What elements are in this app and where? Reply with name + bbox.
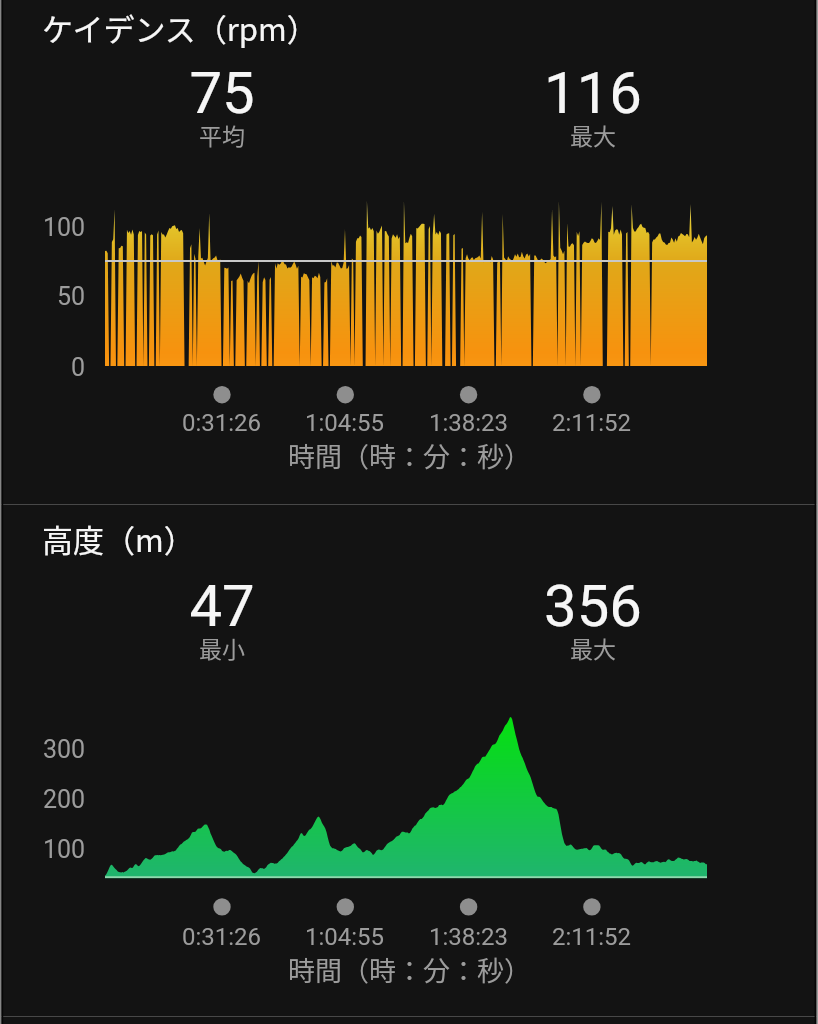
staticText: 2:11:52 [552, 923, 632, 951]
staticText: 300 [43, 735, 86, 764]
staticText: 0 [71, 353, 86, 382]
staticText: 高度（m） [42, 516, 195, 561]
staticText: 時間（時：分：秒） [288, 436, 531, 475]
staticText: 1:38:23 [429, 923, 509, 951]
button[interactable]: ケイデンス（rpm） [0, 0, 818, 504]
staticText: ケイデンス（rpm） [42, 5, 318, 50]
staticText: 0:31:26 [182, 923, 262, 951]
staticText: 1:04:55 [305, 923, 385, 951]
staticText: 2:11:52 [552, 409, 632, 437]
staticText: 200 [43, 785, 86, 814]
staticText: 最小 [199, 631, 245, 664]
staticText: 75 [189, 59, 255, 127]
staticText: 100 [43, 835, 86, 864]
staticText: 最大 [570, 631, 616, 664]
staticText: 356 [544, 572, 642, 640]
staticText: 最大 [570, 118, 616, 151]
staticText: 100 [43, 213, 86, 242]
staticText: 平均 [199, 118, 245, 151]
staticText: 1:04:55 [305, 409, 385, 437]
staticText: 時間（時：分：秒） [288, 950, 531, 989]
staticText: 0:31:26 [182, 409, 262, 437]
button[interactable]: 高度（m） [0, 505, 818, 1016]
staticText: 116 [544, 59, 642, 127]
staticText: 50 [57, 282, 86, 311]
staticText: 1:38:23 [429, 409, 509, 437]
staticText: 47 [189, 572, 255, 640]
